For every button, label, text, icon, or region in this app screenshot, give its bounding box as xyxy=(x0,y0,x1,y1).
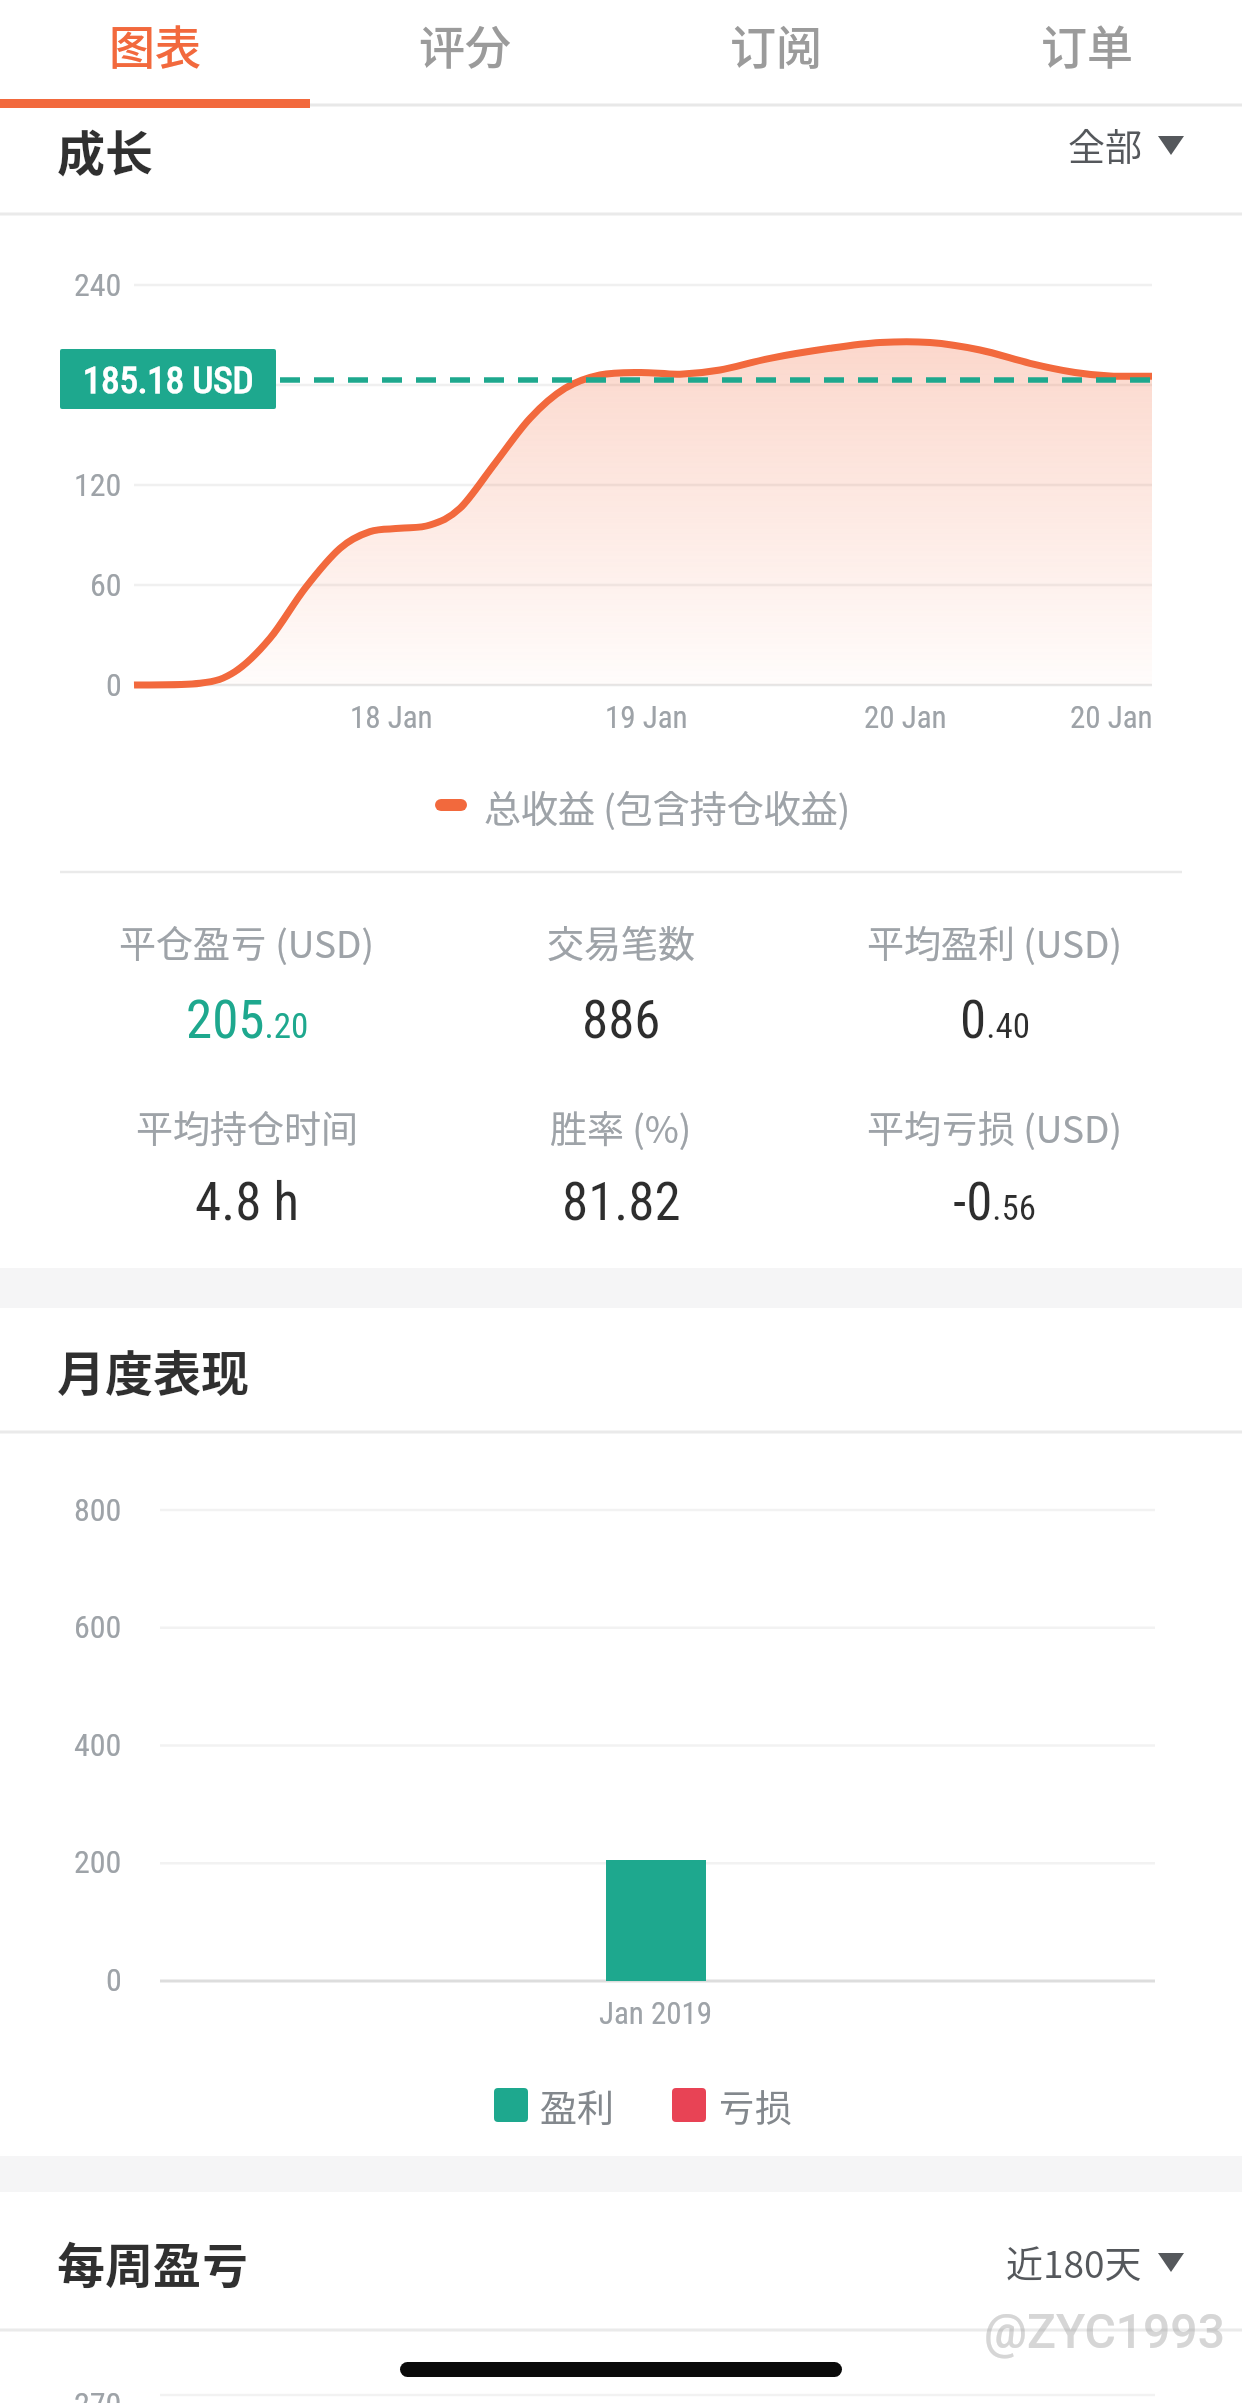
staticText: 亏损 xyxy=(718,2079,792,2133)
staticText: 0.40 xyxy=(960,989,1030,1051)
staticText: 886 xyxy=(582,989,661,1051)
staticText: 全部 xyxy=(1068,118,1142,172)
staticText: 200 xyxy=(74,1843,122,1881)
staticText: 近180天 xyxy=(1006,2235,1142,2289)
staticText: 600 xyxy=(74,1608,122,1646)
staticText: 胜率 (%) xyxy=(550,1100,692,1154)
staticText: 月度表现 xyxy=(57,1335,250,1405)
staticText: 400 xyxy=(74,1726,122,1764)
staticText: 18 Jan xyxy=(350,699,433,735)
staticText: Jan 2019 xyxy=(599,1995,713,2031)
staticText: 平均亏损 (USD) xyxy=(867,1100,1123,1154)
staticText: 0 xyxy=(106,666,122,704)
button[interactable]: 订阅 xyxy=(620,0,931,88)
staticText: 订阅 xyxy=(730,11,822,78)
button[interactable]: 评分 xyxy=(310,0,620,88)
button[interactable]: 近180天 xyxy=(940,2214,1190,2310)
staticText: 240 xyxy=(74,266,122,304)
staticText: 60 xyxy=(90,566,122,604)
staticText: 0 xyxy=(106,1961,122,1999)
button[interactable]: 全部 xyxy=(950,97,1190,193)
staticText: 4.8 h xyxy=(195,1171,300,1233)
button[interactable]: 图表 xyxy=(0,0,310,88)
staticText: 平均盈利 (USD) xyxy=(867,915,1123,969)
staticText: 20 Jan xyxy=(1070,699,1153,735)
staticText: -0.56 xyxy=(953,1171,1037,1233)
staticText: 270 xyxy=(74,2385,122,2403)
staticText: 800 xyxy=(74,1491,122,1529)
button[interactable]: 订单 xyxy=(931,0,1242,88)
staticText: 盈利 xyxy=(540,2079,614,2133)
staticText: 205.20 xyxy=(186,989,309,1051)
staticText: 成长 xyxy=(57,115,154,185)
staticText: 订单 xyxy=(1041,11,1133,78)
staticText: 185.18 USD xyxy=(83,359,254,402)
staticText: @ZYC1993 xyxy=(984,2303,1225,2359)
staticText: 总收益 (包含持仓收益) xyxy=(484,780,851,834)
staticText: 19 Jan xyxy=(605,699,688,735)
staticText: 交易笔数 xyxy=(547,915,695,969)
staticText: 81.82 xyxy=(562,1171,681,1233)
staticText: 图表 xyxy=(109,11,201,78)
staticText: 评分 xyxy=(419,11,511,78)
staticText: 120 xyxy=(74,466,122,504)
staticText: 平仓盈亏 (USD) xyxy=(119,915,375,969)
staticText: 20 Jan xyxy=(864,699,947,735)
staticText: 每周盈亏 xyxy=(57,2227,250,2297)
staticText: 平均持仓时间 xyxy=(136,1100,358,1154)
